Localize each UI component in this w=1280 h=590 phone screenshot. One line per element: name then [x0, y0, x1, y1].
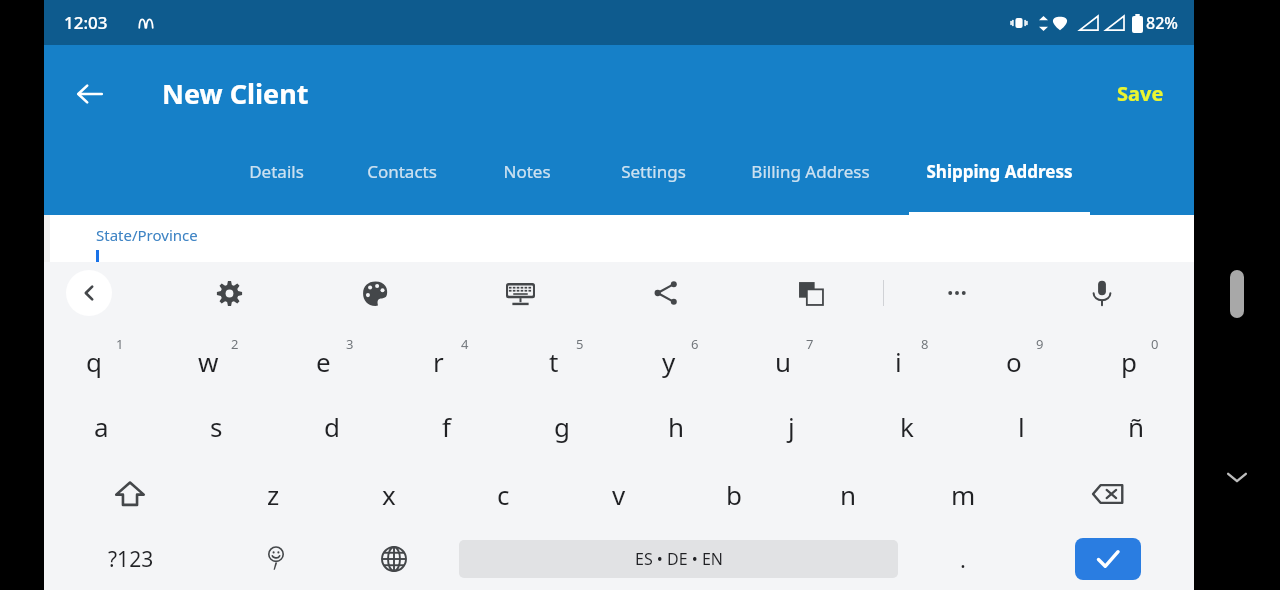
- staticText: e: [316, 344, 331, 379]
- staticText: l: [1018, 409, 1025, 444]
- staticText: v: [612, 477, 626, 512]
- button[interactable]: Emoji: [217, 528, 335, 590]
- staticText: Shipping Address: [926, 160, 1073, 183]
- staticText: ñ: [1128, 409, 1145, 444]
- button[interactable]: Settings: [590, 142, 716, 215]
- button[interactable]: Navigate up: [66, 70, 114, 118]
- button[interactable]: p: [1079, 324, 1194, 392]
- button[interactable]: j: [734, 392, 849, 460]
- button[interactable]: q: [44, 324, 159, 392]
- staticText: z: [267, 477, 280, 512]
- staticText: r: [433, 344, 444, 379]
- staticText: Contacts: [367, 160, 437, 183]
- button[interactable]: u: [734, 324, 849, 392]
- button[interactable]: Contacts: [339, 142, 464, 215]
- button[interactable]: Enter: [1075, 538, 1141, 580]
- staticText: Billing Address: [751, 160, 870, 183]
- button[interactable]: Share: [593, 262, 738, 324]
- button[interactable]: ?123: [44, 528, 217, 590]
- button[interactable]: b: [676, 460, 791, 528]
- staticText: c: [497, 477, 510, 512]
- button[interactable]: r: [389, 324, 504, 392]
- button[interactable]: c: [446, 460, 561, 528]
- staticText: 82%: [1146, 12, 1178, 34]
- button[interactable]: a: [44, 392, 159, 460]
- staticText: m: [951, 477, 976, 512]
- button[interactable]: Backspace: [1021, 460, 1194, 528]
- staticText: 3: [346, 335, 354, 353]
- button[interactable]: i: [849, 324, 964, 392]
- button[interactable]: Notes: [464, 142, 590, 215]
- staticText: New Client: [162, 75, 309, 112]
- staticText: u: [775, 344, 792, 379]
- staticText: f: [442, 409, 451, 444]
- button[interactable]: y: [619, 324, 734, 392]
- button[interactable]: n: [791, 460, 906, 528]
- button[interactable]: Settings: [156, 262, 302, 324]
- staticText: t: [549, 344, 559, 379]
- button[interactable]: Translate: [738, 262, 883, 324]
- button[interactable]: Change language: [335, 528, 453, 590]
- button[interactable]: k: [849, 392, 964, 460]
- button[interactable]: x: [331, 460, 446, 528]
- staticText: q: [86, 344, 102, 379]
- button[interactable]: ES • DE • EN: [459, 540, 898, 578]
- staticText: g: [554, 409, 570, 444]
- button[interactable]: v: [561, 460, 676, 528]
- staticText: k: [900, 409, 914, 444]
- button[interactable]: z: [216, 460, 331, 528]
- staticText: 1: [116, 335, 124, 353]
- button[interactable]: Back: [66, 270, 112, 316]
- staticText: .: [960, 544, 966, 574]
- button[interactable]: t: [504, 324, 619, 392]
- button[interactable]: Voice input: [1029, 262, 1174, 324]
- staticText: Notes: [503, 160, 551, 183]
- staticText: i: [895, 344, 902, 379]
- staticText: h: [668, 409, 685, 444]
- staticText: 12:03: [64, 11, 108, 34]
- button[interactable]: w: [159, 324, 274, 392]
- button[interactable]: ñ: [1079, 392, 1194, 460]
- staticText: ES • DE • EN: [635, 548, 723, 570]
- button[interactable]: Shipping Address: [905, 142, 1094, 215]
- button[interactable]: g: [504, 392, 619, 460]
- staticText: Save: [1117, 80, 1164, 107]
- staticText: o: [1006, 344, 1022, 379]
- staticText: 8: [921, 335, 929, 353]
- button[interactable]: Shift: [44, 460, 216, 528]
- button[interactable]: More options: [884, 262, 1029, 324]
- staticText: d: [324, 409, 340, 444]
- button[interactable]: Scroll handle: [1230, 270, 1244, 318]
- staticText: 7: [806, 335, 814, 353]
- button[interactable]: l: [964, 392, 1079, 460]
- button[interactable]: .: [904, 528, 1022, 590]
- staticText: n: [840, 477, 857, 512]
- staticText: 4: [461, 335, 469, 353]
- staticText: x: [382, 477, 396, 512]
- button[interactable]: m: [906, 460, 1021, 528]
- staticText: ?123: [108, 545, 154, 574]
- button[interactable]: Keyboard mode: [448, 262, 593, 324]
- button[interactable]: Themes: [302, 262, 448, 324]
- staticText: a: [94, 409, 109, 444]
- button[interactable]: f: [389, 392, 504, 460]
- button[interactable]: Hide keyboard: [1215, 455, 1259, 499]
- staticText: 2: [231, 335, 239, 353]
- button[interactable]: d: [274, 392, 389, 460]
- button[interactable]: Details: [214, 142, 339, 215]
- staticText: 0: [1151, 335, 1159, 353]
- staticText: 9: [1036, 335, 1044, 353]
- staticText: s: [210, 409, 223, 444]
- button[interactable]: Billing Address: [716, 142, 905, 215]
- staticText: w: [198, 344, 219, 379]
- staticText: j: [788, 409, 795, 444]
- button[interactable]: h: [619, 392, 734, 460]
- staticText: Details: [249, 160, 304, 183]
- staticText: 5: [576, 335, 584, 353]
- button[interactable]: s: [159, 392, 274, 460]
- staticText: Settings: [621, 160, 686, 183]
- staticText: p: [1121, 344, 1137, 379]
- button[interactable]: e: [274, 324, 389, 392]
- button[interactable]: Save: [1101, 72, 1180, 115]
- button[interactable]: o: [964, 324, 1079, 392]
